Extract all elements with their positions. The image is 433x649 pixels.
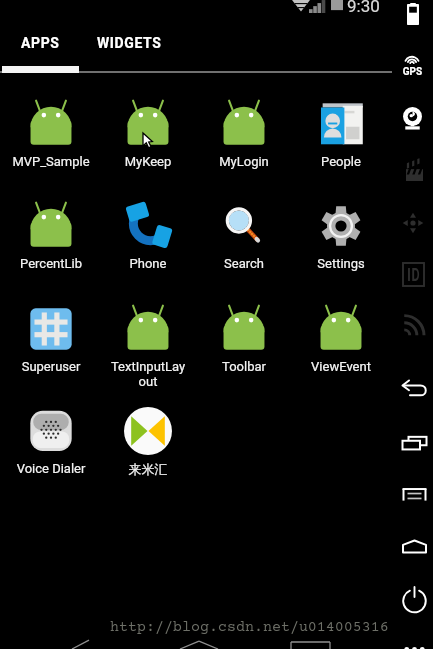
staticText: GPS (400, 66, 425, 78)
button[interactable]: Phone (100, 200, 196, 292)
staticText: http://blog.csdn.net/u014005316 (110, 619, 389, 636)
button[interactable]: Record (402, 159, 427, 185)
button[interactable]: Toolbar (196, 303, 292, 395)
button[interactable]: Menu (398, 484, 431, 505)
button[interactable]: ID (399, 259, 428, 290)
button[interactable]: TextInputLayout (100, 303, 196, 395)
staticText: Settings (302, 256, 380, 271)
staticText: MyKeep (109, 154, 187, 169)
staticText: PercentLib (12, 256, 90, 271)
button[interactable]: Navigation bar (0, 639, 392, 649)
button[interactable]: Voice Dialer (3, 405, 99, 497)
staticText: MyLogin (205, 154, 283, 169)
button[interactable]: Battery (403, 0, 423, 29)
button[interactable]: MVP_Sample (3, 98, 99, 190)
button[interactable]: Superuser (3, 303, 99, 395)
button[interactable]: Network (399, 310, 428, 340)
staticText: TextInputLayout (109, 359, 187, 389)
button[interactable]: Power (399, 582, 430, 615)
button[interactable]: MyLogin (196, 98, 292, 190)
staticText: Superuser (12, 359, 90, 374)
staticText: People (302, 154, 380, 169)
button[interactable]: ViewEvent (293, 303, 389, 395)
staticText: 9:30 (347, 0, 380, 16)
button[interactable]: GPS (398, 52, 426, 79)
staticText: MVP_Sample (12, 154, 90, 169)
button[interactable]: People (293, 98, 389, 190)
button[interactable]: Webcam (399, 103, 426, 134)
staticText: APPS (21, 35, 60, 51)
staticText: Search (205, 256, 283, 271)
staticText: WIDGETS (97, 35, 162, 51)
button[interactable]: Recents (398, 432, 431, 454)
button[interactable]: PercentLib (3, 200, 99, 292)
staticText: ViewEvent (302, 359, 380, 374)
button[interactable]: WIDGETS (81, 28, 178, 58)
staticText: Toolbar (205, 359, 283, 374)
staticText: Voice Dialer (12, 461, 90, 476)
button[interactable]: MyKeep (100, 98, 196, 190)
button[interactable]: 来米汇 (100, 405, 196, 497)
staticText: Phone (109, 256, 187, 271)
button[interactable]: Move (399, 208, 427, 238)
button[interactable]: More (400, 641, 429, 649)
button[interactable]: APPS (0, 28, 81, 58)
button[interactable]: Home (398, 536, 431, 557)
button[interactable]: Search (196, 200, 292, 292)
staticText: 来米汇 (109, 461, 187, 477)
button[interactable]: Settings (293, 200, 389, 292)
button[interactable]: Back (398, 379, 431, 401)
